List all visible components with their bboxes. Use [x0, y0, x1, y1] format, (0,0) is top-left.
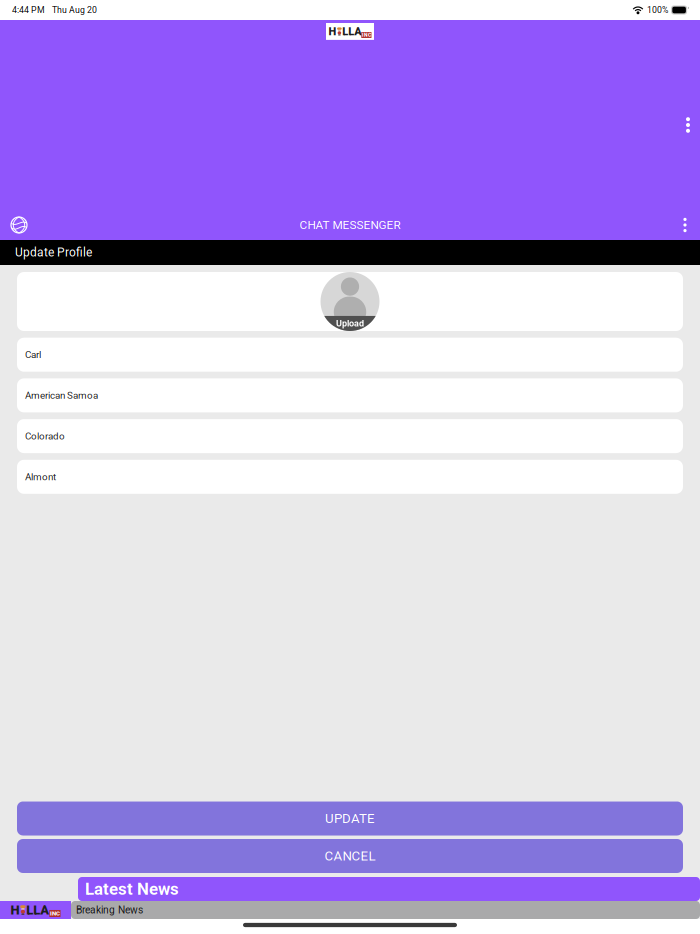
button[interactable]: CANCEL [17, 839, 683, 873]
staticText: CHAT MESSENGER [299, 218, 400, 232]
button[interactable]: UPDATE [17, 801, 683, 835]
staticText: UPDATE [325, 811, 375, 826]
staticText: 4:44 PM [12, 5, 45, 15]
staticText: H [328, 25, 336, 38]
button[interactable]: More options [674, 210, 696, 240]
button[interactable]: Web [6, 210, 32, 240]
staticText: INC [50, 910, 60, 917]
staticText: Almont [25, 471, 56, 483]
staticText: Upload [336, 318, 364, 329]
button[interactable]: H [0, 901, 700, 919]
staticText: American Samoa [25, 390, 98, 401]
button[interactable]: Colorado [17, 419, 683, 453]
staticText: H [10, 902, 19, 918]
staticText: INC [362, 32, 371, 38]
button[interactable]: Almont [17, 460, 683, 494]
staticText: Breaking News [76, 904, 143, 916]
staticText: LLA [26, 902, 49, 918]
staticText: Thu Aug 20 [52, 5, 97, 15]
staticText: Colorado [25, 430, 65, 442]
staticText: Latest News [85, 879, 179, 899]
button[interactable]: Upload profile photo [17, 272, 683, 331]
staticText: Carl [25, 349, 41, 360]
staticText: Update Profile [15, 245, 92, 260]
button[interactable]: Carl [17, 338, 683, 372]
button[interactable]: American Samoa [17, 378, 683, 412]
button[interactable]: Ad options [678, 114, 698, 136]
staticText: CANCEL [324, 848, 375, 864]
staticText: LLA [342, 25, 361, 38]
staticText: 100% [647, 5, 668, 15]
